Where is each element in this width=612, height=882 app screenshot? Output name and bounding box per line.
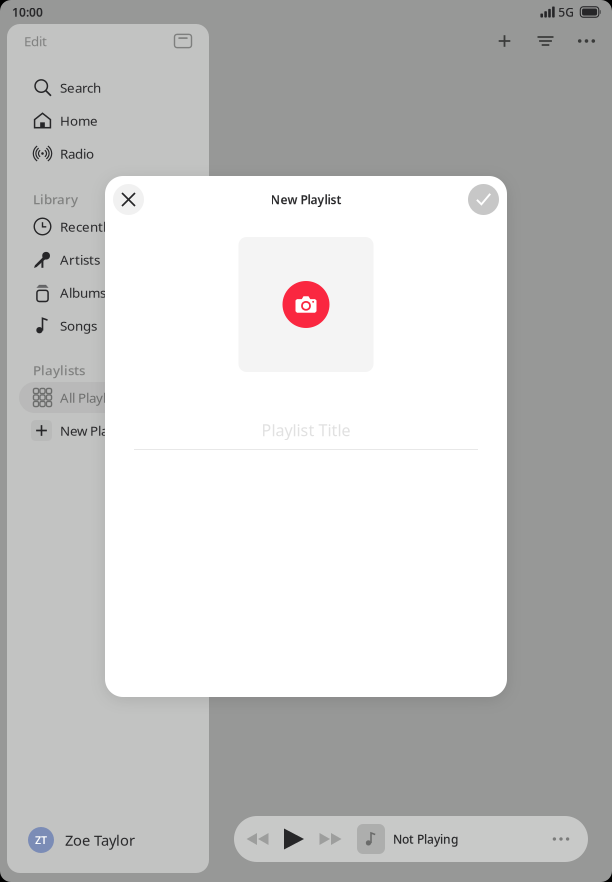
staticText: Artists — [60, 251, 100, 268]
staticText: New Playlist — [60, 422, 132, 439]
button[interactable]: Edit — [24, 25, 47, 57]
button[interactable]: Next — [311, 816, 350, 862]
button[interactable]: Add — [484, 24, 525, 58]
staticText: 5G — [558, 4, 574, 20]
staticText: Home — [60, 112, 98, 129]
staticText: New Playlist — [270, 191, 341, 207]
button[interactable]: Songs — [7, 309, 209, 342]
button[interactable]: More — [566, 24, 607, 58]
staticText: Recently Added — [60, 218, 157, 235]
staticText: Not Playing — [393, 831, 458, 847]
button[interactable]: Albums — [7, 276, 209, 309]
button[interactable]: New Playlist — [7, 414, 209, 447]
staticText: Zoe Taylor — [65, 830, 135, 850]
staticText: Edit — [24, 32, 47, 50]
button[interactable]: Play — [277, 816, 311, 862]
button[interactable]: Choose Playlist Artwork — [238, 237, 373, 372]
button[interactable]: More options — [542, 816, 580, 862]
button[interactable]: Artists — [7, 243, 209, 276]
staticText: Radio — [60, 145, 94, 162]
button[interactable]: Previous — [238, 816, 277, 862]
staticText: Playlist Title — [261, 419, 350, 441]
staticText: Songs — [60, 317, 97, 334]
staticText: All Playlists — [60, 389, 126, 406]
button[interactable]: ZT — [7, 818, 209, 862]
button[interactable]: Sort — [525, 24, 566, 58]
staticText: ZT — [35, 833, 47, 847]
button[interactable]: Hide Sidebar — [170, 28, 196, 54]
staticText: Playlists — [33, 361, 85, 379]
staticText: Search — [60, 79, 101, 96]
button[interactable]: Close — [113, 184, 144, 215]
button[interactable]: All Playlists — [7, 381, 209, 414]
staticText: 10:00 — [12, 4, 43, 20]
button[interactable]: Done — [468, 184, 499, 215]
staticText: Library — [33, 190, 78, 208]
button[interactable]: Home — [7, 104, 209, 137]
staticText: Albums — [60, 284, 106, 301]
button[interactable]: Now Playing Artwork — [357, 824, 385, 854]
button[interactable]: Recently Added — [7, 210, 209, 243]
button[interactable]: Search — [7, 71, 209, 104]
button[interactable]: Radio — [7, 137, 209, 170]
